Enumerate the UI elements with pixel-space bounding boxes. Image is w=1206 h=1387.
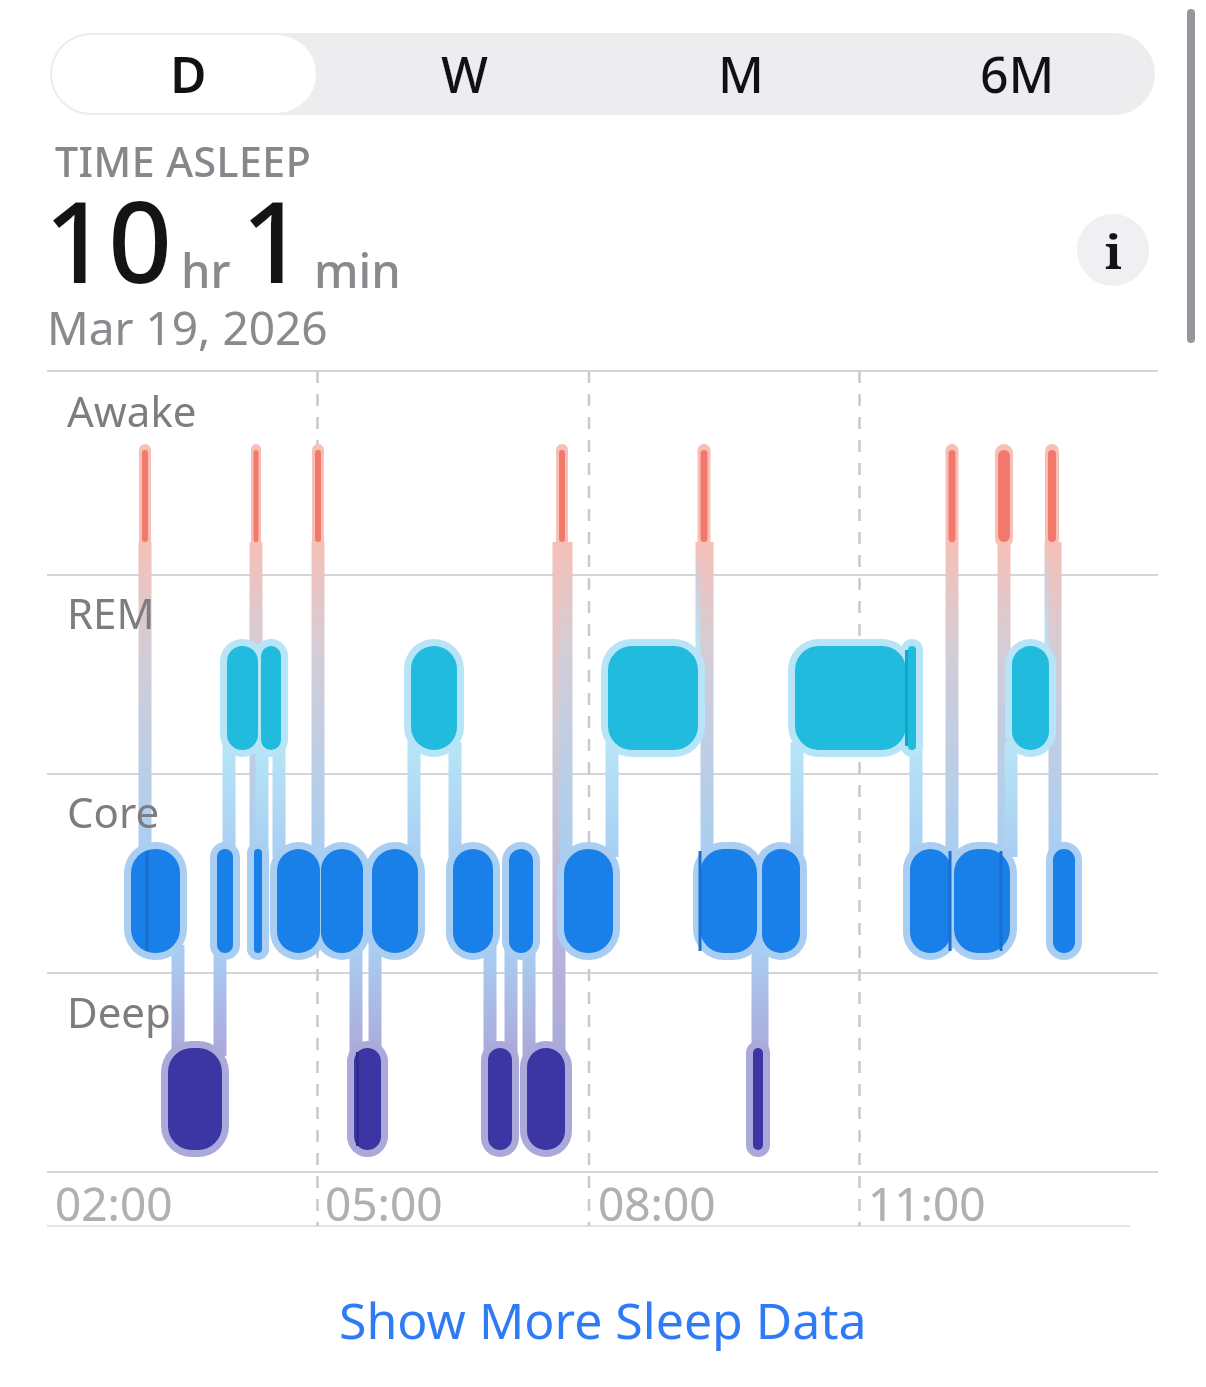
button[interactable]: W [327, 33, 603, 115]
staticText: Awake [67, 382, 197, 439]
staticText: REM [67, 584, 155, 641]
button[interactable]: i [1077, 214, 1149, 286]
staticText: 10 [44, 163, 173, 316]
staticText: 02:00 [55, 1172, 173, 1235]
staticText: Mar 19, 2026 [47, 296, 328, 359]
staticText: Show More Sleep Data [339, 1286, 867, 1354]
staticText: min [314, 238, 401, 302]
button[interactable]: D [50, 33, 327, 115]
staticText: 08:00 [598, 1172, 716, 1235]
button[interactable]: 6M [879, 33, 1155, 115]
staticText: 6M [980, 40, 1055, 108]
staticText: 05:00 [325, 1172, 443, 1235]
staticText: Core [67, 783, 160, 840]
staticText: D [170, 40, 207, 108]
staticText: TIME ASLEEP [55, 133, 312, 189]
staticText: Deep [67, 983, 171, 1040]
staticText: 1 [241, 163, 306, 316]
staticText: i [1105, 218, 1122, 283]
button[interactable]: M [603, 33, 879, 115]
staticText: W [441, 40, 489, 108]
staticText: M [718, 40, 764, 108]
button[interactable]: Show More Sleep Data [339, 1286, 867, 1354]
staticText: 11:00 [868, 1172, 986, 1235]
staticText: hr [181, 238, 231, 302]
